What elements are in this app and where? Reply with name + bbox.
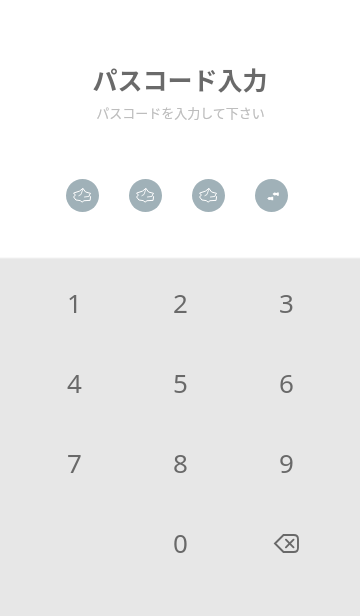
staticText: 7 [67,445,82,480]
button[interactable]: Backspace [233,502,339,582]
staticText: パスコードを入力して下さい [96,103,265,122]
staticText: 0 [173,525,188,560]
button[interactable]: 1 [21,262,127,342]
button[interactable]: 2 [127,262,233,342]
button[interactable]: 4 [21,342,127,422]
button[interactable]: 3 [233,262,339,342]
staticText: 3 [279,285,294,320]
button[interactable]: 7 [21,422,127,502]
staticText: 4 [67,365,82,400]
button[interactable]: 6 [233,342,339,422]
staticText: 5 [173,365,188,400]
button[interactable]: 9 [233,422,339,502]
staticText: 1 [67,285,82,320]
staticText: パスコード入力 [92,61,268,97]
button[interactable]: 5 [127,342,233,422]
staticText: 6 [279,365,294,400]
staticText: 9 [279,445,294,480]
other: Backspace [274,534,299,553]
button[interactable]: 8 [127,422,233,502]
button[interactable]: 0 [127,502,233,582]
staticText: 8 [173,445,188,480]
staticText: 2 [173,285,188,320]
